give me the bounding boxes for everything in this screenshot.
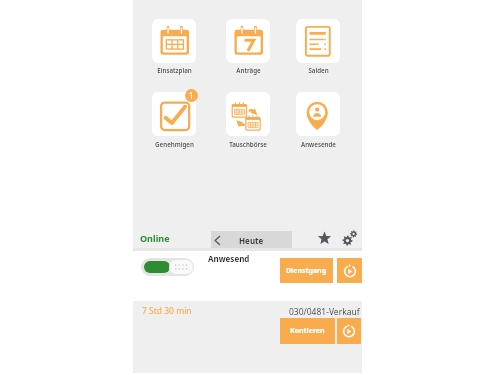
- button[interactable]: [296, 19, 340, 63]
- button[interactable]: Kontieren: [280, 318, 335, 344]
- staticText: Anträge: [236, 66, 261, 74]
- staticText: Genehmigen: [155, 140, 194, 148]
- button[interactable]: Zeiterfassung starten: [337, 258, 362, 283]
- button[interactable]: [152, 19, 196, 63]
- other: Zurück: [214, 236, 220, 245]
- button[interactable]: Zeiterfassung starten: [337, 318, 361, 344]
- staticText: Kontieren: [290, 326, 325, 336]
- staticText: Salden: [308, 66, 329, 74]
- button[interactable]: [152, 92, 196, 136]
- staticText: 1: [189, 90, 194, 101]
- button[interactable]: [226, 92, 270, 136]
- button[interactable]: Zurück: [211, 231, 292, 249]
- button[interactable]: Dienstgang: [280, 258, 333, 283]
- staticText: Anwesend: [208, 253, 250, 264]
- staticText: Online: [140, 232, 170, 244]
- staticText: 7 Std 30 min: [142, 305, 192, 317]
- button[interactable]: [296, 92, 340, 136]
- button[interactable]: [226, 19, 270, 63]
- button[interactable]: Favoriten: [315, 228, 334, 247]
- staticText: Anwesende: [301, 140, 336, 148]
- staticText: Einsatzplan: [157, 66, 192, 74]
- staticText: Heute: [239, 235, 264, 246]
- staticText: 030/0481-Verkauf: [289, 306, 360, 318]
- staticText: Dienstgang: [286, 266, 327, 276]
- staticText: Tauschbörse: [229, 140, 267, 148]
- button[interactable]: Einstellungen: [338, 227, 358, 247]
- button[interactable]: Anwesend Schalter: [141, 258, 194, 276]
